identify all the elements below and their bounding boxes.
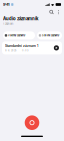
button[interactable]: Všechny záznamy — [3, 31, 35, 39]
staticText: Audio záznamník — [3, 16, 38, 21]
staticText: 9:41 — [3, 2, 10, 7]
button[interactable]: Sdílené záznamy — [37, 31, 62, 39]
staticText: 9. 6. 2025 0:03 — [5, 49, 28, 52]
staticText: Všechny záznamy — [8, 34, 25, 37]
button[interactable]: Search — [49, 9, 54, 14]
staticText: 1 záznam — [3, 22, 13, 25]
button[interactable]: Record — [24, 115, 40, 131]
button[interactable]: Standardní záznam 1 — [2, 41, 62, 54]
staticText: Standardní záznam 1 — [5, 44, 38, 48]
staticText: Sdílené záznamy — [42, 34, 59, 37]
button[interactable]: More — [56, 9, 61, 14]
